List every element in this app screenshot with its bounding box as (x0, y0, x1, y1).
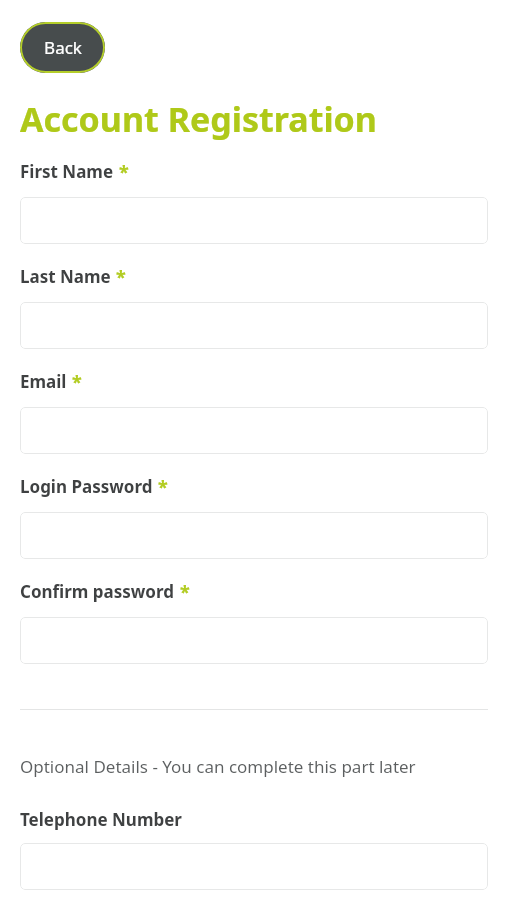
button[interactable]: Back (20, 22, 105, 73)
staticText: * (119, 160, 129, 185)
staticText: * (72, 370, 82, 395)
button[interactable]: Confirm password (20, 617, 488, 664)
button[interactable]: First Name (20, 197, 488, 244)
staticText: * (158, 475, 168, 500)
button[interactable]: Login Password (20, 512, 488, 559)
staticText: Last Name (20, 265, 111, 288)
staticText: First Name (20, 160, 114, 183)
button[interactable]: Last Name (20, 302, 488, 349)
staticText: Telephone Number (20, 808, 182, 831)
staticText: Account Registration (20, 96, 377, 142)
staticText: * (180, 580, 190, 605)
staticText: Optional Details - You can complete this… (20, 755, 416, 778)
staticText: Email (20, 370, 67, 393)
button[interactable]: Email (20, 407, 488, 454)
staticText: * (116, 265, 126, 290)
staticText: Back (44, 36, 82, 59)
staticText: Confirm password (20, 580, 175, 603)
button[interactable]: Telephone Number (20, 843, 488, 890)
staticText: Login Password (20, 475, 153, 498)
